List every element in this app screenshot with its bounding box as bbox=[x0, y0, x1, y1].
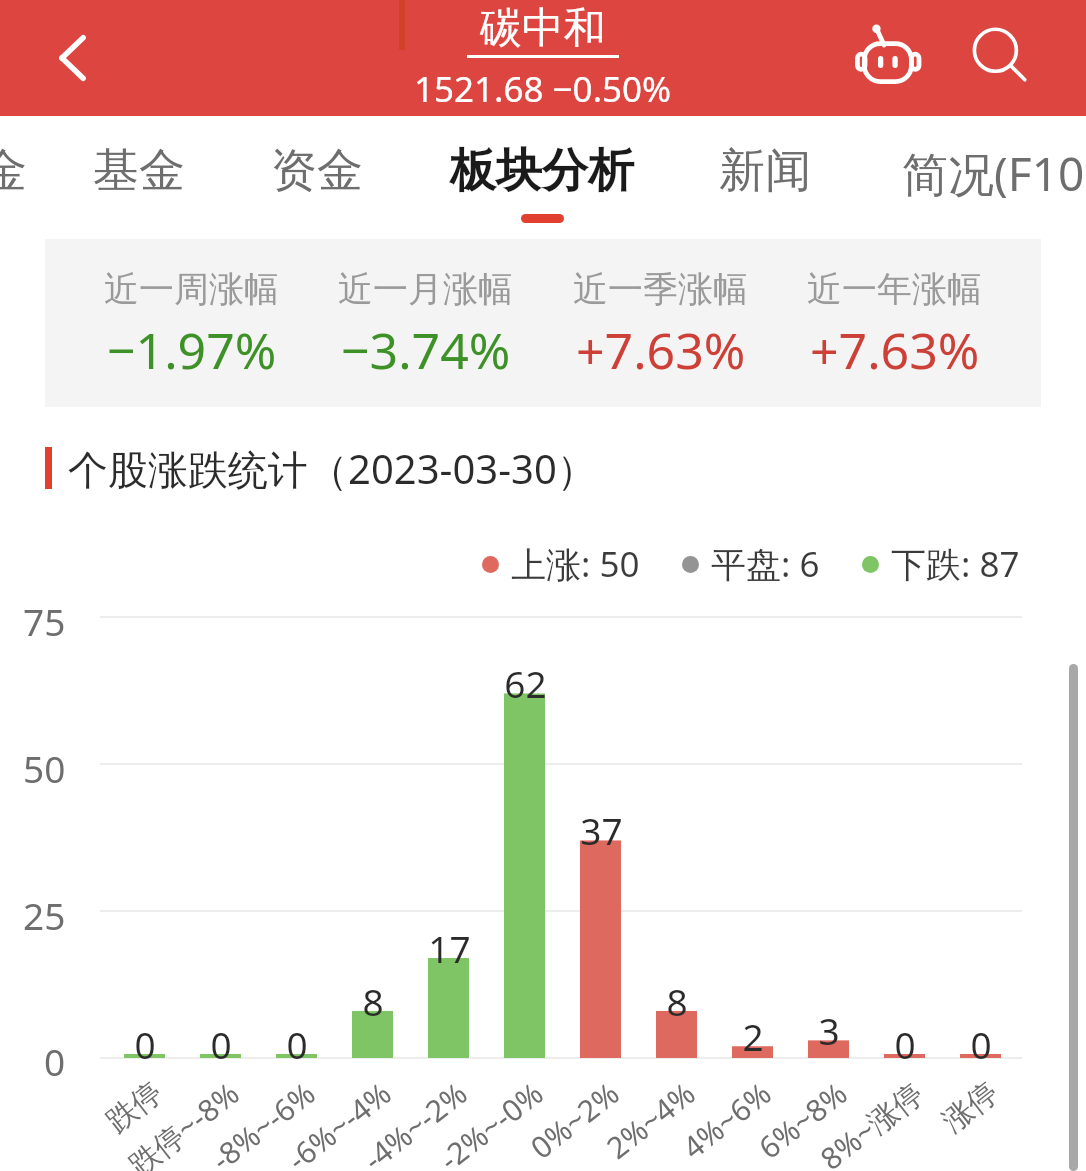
staticText: 4%~6% bbox=[673, 1073, 779, 1168]
staticText: 17 bbox=[428, 923, 471, 973]
staticText: 0 bbox=[894, 1019, 916, 1069]
staticText: 金 bbox=[0, 142, 27, 200]
staticText: 基金 bbox=[93, 142, 185, 200]
button[interactable]: 板块分析 bbox=[392, 116, 692, 232]
staticText: 1521.68 −0.50% bbox=[414, 65, 672, 113]
staticText: 近一周涨幅 bbox=[104, 267, 279, 311]
staticText: 新闻 bbox=[719, 142, 811, 200]
staticText: 简况(F10 bbox=[902, 142, 1085, 205]
staticText: 0 bbox=[44, 1036, 66, 1086]
staticText: 上涨: 50 bbox=[511, 540, 640, 588]
staticText: 平盘: 6 bbox=[711, 540, 820, 588]
staticText: 0%~2% bbox=[521, 1073, 627, 1168]
staticText: 下跌: 87 bbox=[891, 540, 1020, 588]
staticText: 近一月涨幅 bbox=[338, 267, 513, 311]
button[interactable]: 基金 bbox=[0, 116, 289, 232]
staticText: 板块分析 bbox=[450, 142, 634, 200]
staticText: 近一年涨幅 bbox=[807, 267, 982, 311]
staticText: 跌停~-8% bbox=[120, 1073, 247, 1171]
staticText: 25 bbox=[23, 890, 66, 940]
staticText: −3.74% bbox=[341, 316, 511, 384]
button[interactable]: 资金 bbox=[167, 116, 467, 232]
staticText: 涨停 bbox=[935, 1074, 1006, 1140]
button[interactable]: 金 bbox=[0, 116, 154, 232]
staticText: −1.97% bbox=[107, 316, 277, 384]
staticText: -8%~-6% bbox=[202, 1073, 323, 1171]
staticText: 跌停 bbox=[99, 1074, 170, 1140]
staticText: 0 bbox=[970, 1019, 992, 1069]
staticText: 2%~4% bbox=[597, 1073, 703, 1168]
staticText: 近一季涨幅 bbox=[573, 267, 748, 311]
staticText: 62 bbox=[504, 658, 547, 708]
button[interactable]: 新闻 bbox=[615, 116, 915, 232]
staticText: 75 bbox=[23, 596, 66, 646]
staticText: 8 bbox=[666, 976, 688, 1026]
staticText: 50 bbox=[23, 743, 66, 793]
button[interactable]: AI assistant bbox=[836, 0, 942, 116]
staticText: -6%~-4% bbox=[278, 1073, 399, 1171]
button[interactable]: 简况(F10 bbox=[843, 116, 1086, 232]
staticText: 37 bbox=[580, 805, 623, 855]
staticText: -4%~-2% bbox=[354, 1073, 475, 1171]
staticText: -2%~-0% bbox=[430, 1073, 551, 1171]
staticText: 资金 bbox=[271, 142, 363, 200]
staticText: 0 bbox=[134, 1019, 156, 1069]
staticText: 碳中和 bbox=[480, 2, 606, 55]
staticText: +7.63% bbox=[810, 316, 980, 384]
staticText: 8 bbox=[362, 976, 384, 1026]
staticText: 0 bbox=[286, 1019, 308, 1069]
staticText: 8%~涨停 bbox=[811, 1073, 931, 1171]
staticText: 3 bbox=[818, 1005, 840, 1055]
staticText: 个股涨跌统计（2023-03-30） bbox=[68, 441, 597, 496]
button[interactable]: Search bbox=[948, 0, 1054, 116]
staticText: 6%~8% bbox=[749, 1073, 855, 1168]
button[interactable]: Back bbox=[18, 0, 128, 116]
staticText: +7.63% bbox=[576, 316, 746, 384]
staticText: 2 bbox=[742, 1011, 764, 1061]
staticText: 0 bbox=[210, 1019, 232, 1069]
